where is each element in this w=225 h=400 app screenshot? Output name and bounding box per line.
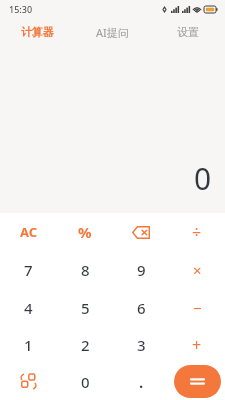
staticText: AI提问 [96,25,129,40]
staticText: 15:30 [9,3,33,15]
button[interactable]: Backspace [113,213,169,251]
button[interactable]: AI提问 [75,18,150,46]
button[interactable]: 7 [0,251,57,289]
button[interactable]: 4 [0,289,57,326]
staticText: % [78,222,92,242]
staticText: 1 [24,335,33,355]
staticText: 7 [24,260,33,280]
button[interactable]: 0 [57,363,113,400]
button[interactable]: % [57,213,113,251]
staticText: − [193,298,202,318]
staticText: 4 [24,298,33,318]
staticText: 计算器 [21,25,54,39]
staticText: × [193,260,202,280]
button[interactable]: . [113,363,169,400]
staticText: 3 [137,335,146,355]
button[interactable]: 2 [57,326,113,363]
button[interactable]: 6 [113,289,169,326]
staticText: 5 [81,298,90,318]
button[interactable]: 8 [57,251,113,289]
staticText: ÷ [192,221,202,243]
button[interactable]: × [169,251,225,289]
button[interactable]: 计算器 [0,18,75,46]
button[interactable]: ÷ [169,213,225,251]
staticText: 9 [137,260,146,280]
staticText: 2 [81,335,90,355]
staticText: AC [20,223,38,241]
button[interactable]: Equals [174,365,221,398]
button[interactable]: 1 [0,326,57,363]
staticText: 0 [194,158,212,199]
button[interactable]: 9 [113,251,169,289]
staticText: 0 [81,372,90,392]
button[interactable]: Unit converter [0,363,57,400]
staticText: 设置 [177,25,199,39]
button[interactable]: 5 [57,289,113,326]
staticText: + [192,334,202,356]
button[interactable]: − [169,289,225,326]
staticText: . [139,372,144,392]
staticText: 6 [137,298,146,318]
button[interactable]: AC [0,213,57,251]
staticText: 8 [81,260,90,280]
button[interactable]: 3 [113,326,169,363]
button[interactable]: 设置 [150,18,225,46]
button[interactable]: + [169,326,225,363]
